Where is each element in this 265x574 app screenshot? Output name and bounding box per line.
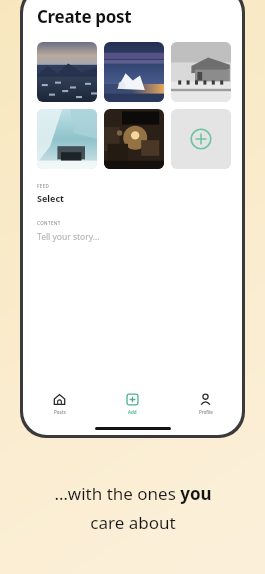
button[interactable]: Photo [104,109,164,169]
staticText: Select [37,192,64,204]
staticText: FEED [37,183,50,189]
button[interactable]: Posts [23,387,96,421]
button[interactable]: Add [96,387,169,421]
staticText: Profile [199,409,213,415]
staticText: care about [90,511,176,534]
staticText: Tell your story… [37,231,100,243]
button[interactable]: Photo [171,42,231,102]
button[interactable]: Profile [169,387,242,421]
staticText: …with the ones you [54,482,212,505]
staticText: Create post [37,5,132,28]
staticText: CONTENT [37,220,61,226]
button[interactable]: Photo [37,109,97,169]
button[interactable]: Photo [104,42,164,102]
button[interactable]: Select [37,192,228,204]
staticText: Add [128,409,137,415]
button[interactable]: Photo [37,42,97,102]
staticText: Posts [54,409,66,415]
button[interactable]: Add photo [171,109,231,169]
button[interactable]: Tell your story… [37,231,228,243]
